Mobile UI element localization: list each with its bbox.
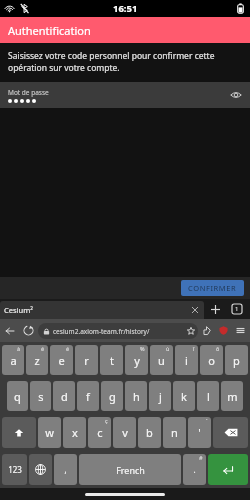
button[interactable]: u: [150, 345, 173, 375]
staticText: g: [109, 389, 116, 404]
button[interactable]: Ajouter aux favoris: [184, 324, 198, 338]
staticText: %: [140, 345, 145, 352]
staticText: m: [227, 389, 238, 404]
button[interactable]: l: [197, 381, 219, 411]
staticText: ù: [166, 345, 170, 352]
button[interactable]: j: [149, 381, 171, 411]
staticText: h: [133, 389, 140, 404]
staticText: ô: [216, 345, 220, 352]
staticText: e: [58, 353, 65, 368]
staticText: o: [208, 353, 215, 368]
button[interactable]: p: [225, 345, 248, 375]
staticText: q: [14, 389, 21, 404]
staticText: r: [84, 353, 89, 368]
button[interactable]: d: [53, 381, 75, 411]
button[interactable]: Majuscule: [2, 417, 36, 448]
staticText: CONFIRMER: [188, 283, 237, 293]
staticText: 123: [8, 464, 22, 475]
staticText: n: [171, 425, 178, 440]
staticText: a: [10, 353, 17, 368]
staticText: é: [66, 345, 70, 352]
button[interactable]: Protection: [215, 322, 232, 339]
staticText: v: [122, 425, 128, 440]
staticText: é: [41, 345, 45, 352]
button[interactable]: k: [173, 381, 195, 411]
button[interactable]: .: [183, 454, 206, 485]
button[interactable]: Onglets ouverts: [226, 299, 248, 319]
staticText: u: [158, 353, 165, 368]
button[interactable]: Entrée: [208, 454, 248, 485]
staticText: d: [61, 389, 68, 404]
button[interactable]: z: [26, 345, 48, 375]
button[interactable]: x: [63, 417, 86, 448]
button[interactable]: Retour: [0, 321, 19, 340]
button[interactable]: Afficher le mot de passe: [228, 87, 244, 103]
button[interactable]: v: [113, 417, 136, 448]
staticText: French: [116, 464, 145, 476]
button[interactable]: 123: [2, 454, 27, 485]
staticText: Mot de passe: [8, 88, 49, 97]
button[interactable]: e: [50, 345, 73, 375]
staticText: Authentification: [8, 23, 91, 38]
button[interactable]: f: [77, 381, 99, 411]
staticText: l: [207, 389, 210, 404]
button[interactable]: a: [2, 345, 24, 375]
button[interactable]: cesium2.axiom-team.fr/history/gfKtXXoNfE…: [38, 323, 198, 339]
staticText: i: [185, 353, 188, 368]
button[interactable]: h: [125, 381, 147, 411]
staticText: b: [146, 425, 153, 440]
button[interactable]: i: [175, 345, 198, 375]
staticText: à: [17, 345, 21, 352]
button[interactable]: y: [125, 345, 148, 375]
staticText: s: [38, 389, 44, 404]
button[interactable]: m: [221, 381, 243, 411]
staticText: Cesium²: [4, 305, 188, 315]
staticText: f: [86, 389, 90, 404]
staticText: ç: [105, 417, 108, 424]
staticText: .: [193, 464, 196, 475]
button[interactable]: s: [30, 381, 51, 411]
staticText: ,: [64, 464, 67, 475]
staticText: x: [72, 425, 78, 440]
button[interactable]: n: [163, 417, 186, 448]
button[interactable]: Cesium²: [0, 301, 204, 319]
staticText: z: [34, 353, 40, 368]
staticText: cesium2.axiom-team.fr/history/gfKtXXoNfE…: [53, 327, 184, 336]
staticText: j: [159, 389, 162, 404]
staticText: î: [193, 345, 195, 352]
button[interactable]: t: [100, 345, 123, 375]
button[interactable]: q: [7, 381, 28, 411]
staticText: #: [199, 454, 203, 461]
button[interactable]: w: [38, 417, 61, 448]
staticText: 1: [235, 305, 239, 313]
staticText: ': [198, 425, 201, 440]
button[interactable]: o: [200, 345, 223, 375]
button[interactable]: CONFIRMER: [181, 280, 244, 296]
button[interactable]: Supprimer: [213, 417, 248, 448]
staticText: t: [110, 353, 114, 368]
button[interactable]: ,: [54, 454, 77, 485]
staticText: Saisissez votre code personnel pour conf…: [8, 50, 242, 74]
staticText: `: [206, 417, 208, 424]
staticText: w: [45, 425, 54, 440]
staticText: c: [97, 425, 103, 440]
button[interactable]: ': [188, 417, 211, 448]
staticText: y: [134, 353, 140, 368]
button[interactable]: Recharger: [19, 321, 38, 340]
button[interactable]: French: [79, 454, 181, 485]
button[interactable]: Menu: [232, 322, 249, 339]
button[interactable]: g: [101, 381, 123, 411]
button[interactable]: c: [88, 417, 111, 448]
staticText: 16:51: [113, 2, 138, 15]
staticText: p: [233, 353, 240, 368]
button[interactable]: Extensions: [198, 322, 215, 339]
button[interactable]: r: [75, 345, 98, 375]
button[interactable]: Fermer l'onglet: [188, 303, 202, 317]
staticText: k: [181, 389, 187, 404]
button[interactable]: b: [138, 417, 161, 448]
button[interactable]: Changer de langue: [29, 454, 52, 485]
button[interactable]: Nouvel onglet: [204, 299, 226, 319]
